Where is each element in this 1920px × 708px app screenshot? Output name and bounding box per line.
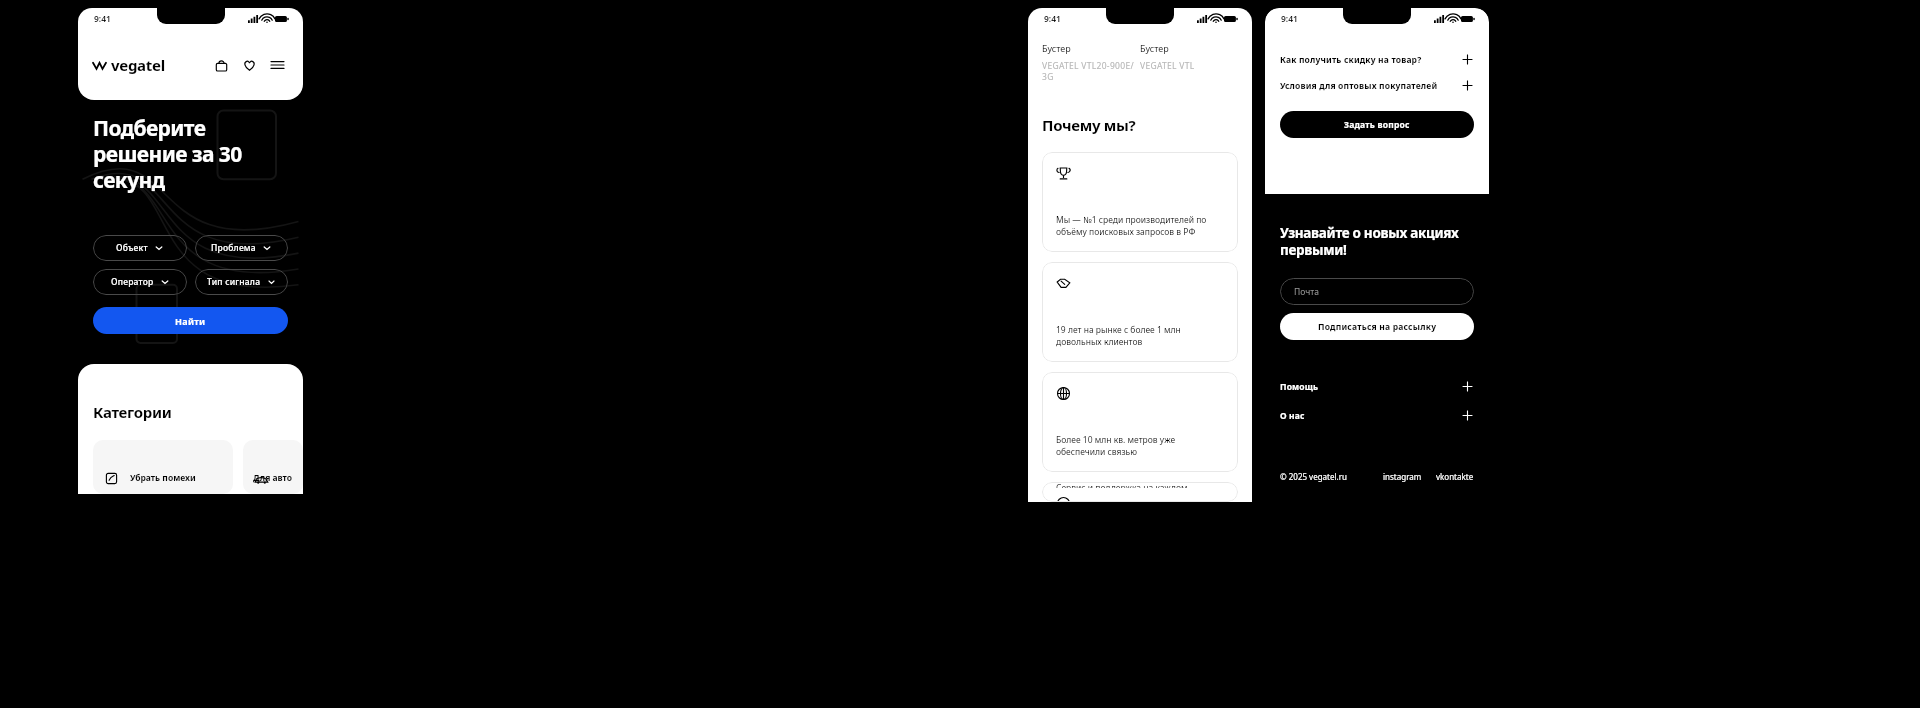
- button[interactable]: Объект: [93, 235, 187, 261]
- staticText: 9:41: [1044, 13, 1061, 25]
- staticText: Помощь: [1280, 381, 1319, 393]
- staticText: Оператор: [111, 276, 154, 288]
- staticText: Категории: [93, 402, 172, 422]
- staticText: Почта: [1294, 286, 1319, 298]
- button[interactable]: instagram: [1383, 471, 1422, 482]
- button[interactable]: Подписаться на рассылку: [1280, 313, 1474, 340]
- staticText: 9:41: [94, 13, 111, 25]
- staticText: vegatel: [111, 55, 165, 75]
- button[interactable]: vegatel: [93, 55, 165, 75]
- staticText: Проблема: [211, 242, 256, 254]
- staticText: Условия для оптовых покупателей: [1280, 80, 1438, 92]
- button[interactable]: Cart: [210, 54, 232, 76]
- button[interactable]: Найти: [93, 307, 288, 334]
- button[interactable]: Favourites: [238, 54, 260, 76]
- button[interactable]: Оператор: [93, 269, 187, 295]
- button[interactable]: Задать вопрос: [1280, 111, 1474, 138]
- staticText: Узнавайте о новых акциях первыми!: [1280, 224, 1459, 259]
- button[interactable]: Условия для оптовых покупателей: [1280, 76, 1474, 95]
- staticText: 9:41: [1281, 13, 1298, 25]
- staticText: Объект: [116, 242, 148, 254]
- staticText: © 2025 vegatel.ru: [1280, 471, 1347, 482]
- staticText: Тип сигнала: [207, 276, 261, 288]
- button[interactable]: Более 10 млн кв. метров уже обеспечили с…: [1042, 372, 1238, 472]
- staticText: Сервис и поддержка на каждом этапе работ…: [1056, 482, 1188, 488]
- staticText: Убрать помехи: [130, 472, 196, 484]
- button[interactable]: Помощь: [1280, 376, 1474, 397]
- button[interactable]: Проблема: [195, 235, 288, 261]
- staticText: 19 лет на рынке с более 1 млн довольных …: [1056, 324, 1181, 348]
- button[interactable]: О нас: [1280, 405, 1474, 426]
- staticText: Задать вопрос: [1344, 119, 1410, 131]
- staticText: VEGATEL VTL: [1140, 60, 1195, 72]
- button[interactable]: Сервис и поддержка на каждом этапе работ…: [1042, 482, 1238, 502]
- staticText: Мы — №1 среди производителей по объёму п…: [1056, 214, 1207, 238]
- staticText: VEGATEL VTL20-900E/3G: [1042, 60, 1140, 82]
- button[interactable]: vkontakte: [1436, 471, 1474, 482]
- staticText: Найти: [175, 315, 206, 327]
- staticText: Подписаться на рассылку: [1318, 321, 1437, 333]
- staticText: Почему мы?: [1042, 115, 1136, 135]
- button[interactable]: 19 лет на рынке с более 1 млн довольных …: [1042, 262, 1238, 362]
- button[interactable]: Menu: [266, 54, 288, 76]
- staticText: Подберите решение за 30 секунд: [93, 114, 242, 195]
- staticText: Бустер: [1140, 42, 1169, 54]
- button[interactable]: Убрать помехи: [93, 440, 233, 494]
- staticText: Более 10 млн кв. метров уже обеспечили с…: [1056, 434, 1176, 458]
- staticText: Бустер: [1042, 42, 1071, 54]
- staticText: О нас: [1280, 410, 1305, 422]
- button[interactable]: Для авто: [243, 440, 303, 494]
- staticText: Как получить скидку на товар?: [1280, 54, 1422, 66]
- button[interactable]: Как получить скидку на товар?: [1280, 50, 1474, 69]
- button[interactable]: Мы — №1 среди производителей по объёму п…: [1042, 152, 1238, 252]
- button[interactable]: Тип сигнала: [195, 269, 288, 295]
- button[interactable]: Почта: [1280, 278, 1474, 305]
- staticText: Для авто: [253, 472, 293, 484]
